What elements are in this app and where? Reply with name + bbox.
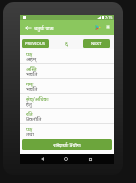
button[interactable]: Settings — [102, 21, 114, 33]
button[interactable]: Home — [61, 154, 71, 164]
button[interactable]: Recent apps — [85, 154, 95, 164]
button[interactable]: रति — [20, 109, 114, 124]
button[interactable]: PREVIOUS — [22, 39, 49, 48]
staticText: सेव्/अधिकः — [26, 95, 49, 102]
staticText: चतुर्थः पाठः — [34, 25, 54, 32]
button[interactable]: सेव्/अधिकः — [20, 94, 114, 109]
button[interactable]: शब्दार्थाः प्रयोगः — [22, 139, 112, 150]
button[interactable]: पठ् — [20, 124, 114, 139]
button[interactable]: गम्ः — [20, 79, 114, 94]
staticText: पठ् — [26, 50, 33, 57]
staticText: शब्दार्थाः प्रयोगः — [53, 141, 81, 148]
staticText: ६ — [65, 40, 69, 48]
staticText: प्रकरोति — [26, 115, 42, 122]
staticText: रति — [26, 110, 33, 117]
staticText: भवति — [26, 85, 38, 92]
staticText: अस्ति — [26, 65, 37, 72]
staticText: गम्ः — [26, 80, 34, 87]
staticText: भवति — [26, 70, 38, 77]
button[interactable]: अस्ति — [20, 64, 114, 79]
button[interactable]: पठ् — [20, 49, 114, 64]
staticText: 7:15 — [105, 15, 113, 20]
staticText: हेतु — [26, 100, 32, 107]
button[interactable]: Back — [22, 20, 35, 36]
button[interactable]: Back — [37, 154, 47, 164]
button[interactable]: Open Play Store — [92, 21, 104, 33]
staticText: PREVIOUS — [25, 41, 46, 47]
staticText: अहम् — [26, 55, 37, 62]
staticText: पठ् — [26, 125, 33, 132]
staticText: तथा — [26, 130, 34, 137]
staticText: NEXT — [91, 41, 102, 47]
button[interactable]: NEXT — [83, 39, 110, 48]
